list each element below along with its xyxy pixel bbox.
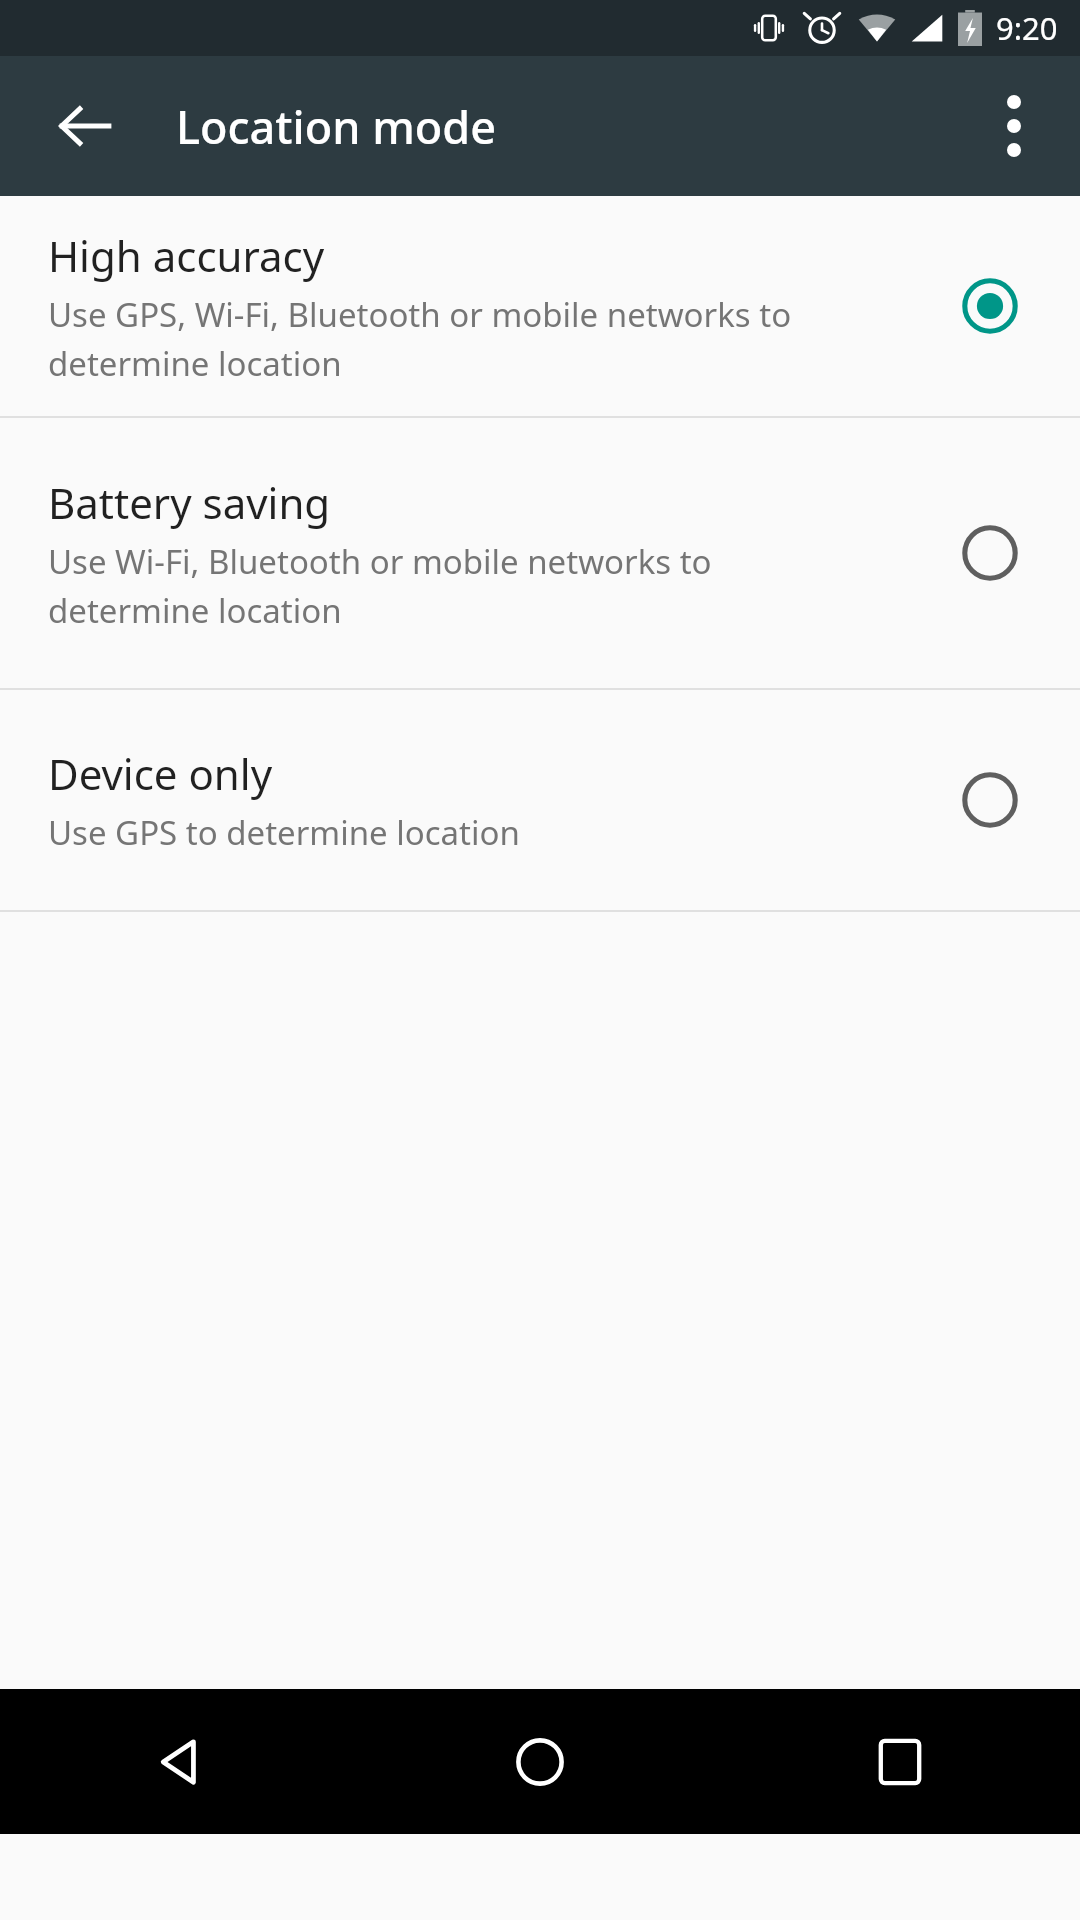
staticText: 9:20: [996, 7, 1058, 49]
button[interactable]: Back: [36, 77, 134, 175]
staticText: Battery saving: [48, 474, 331, 531]
button[interactable]: More options: [966, 78, 1062, 174]
button[interactable]: Battery saving: [0, 418, 1080, 688]
staticText: Use Wi-Fi, Bluetooth or mobile networks …: [48, 539, 876, 633]
button[interactable]: Home: [360, 1689, 720, 1834]
button[interactable]: High accuracy: [0, 196, 1080, 416]
staticText: High accuracy: [48, 227, 325, 284]
button[interactable]: Recent apps: [720, 1689, 1080, 1834]
button[interactable]: Back: [0, 1689, 360, 1834]
staticText: Use GPS to determine location: [48, 810, 520, 855]
staticText: Device only: [48, 745, 273, 802]
staticText: Location mode: [176, 96, 496, 157]
button[interactable]: Device only: [0, 690, 1080, 910]
staticText: Use GPS, Wi-Fi, Bluetooth or mobile netw…: [48, 292, 876, 386]
